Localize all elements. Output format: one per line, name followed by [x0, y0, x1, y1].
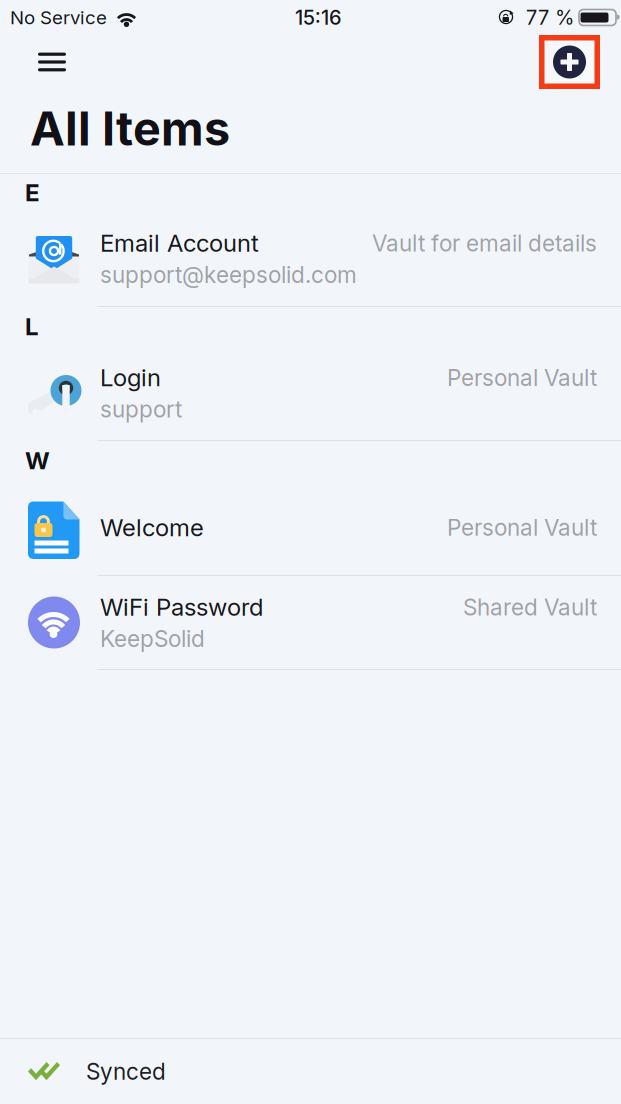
staticText: Personal Vault: [447, 514, 597, 541]
staticText: WiFi Password: [100, 593, 263, 621]
staticText: Synced: [86, 1058, 166, 1085]
button[interactable]: Login: [0, 346, 621, 441]
staticText: Welcome: [100, 513, 204, 542]
staticText: Email Account: [100, 229, 259, 257]
staticText: support: [100, 396, 182, 422]
button[interactable]: Email Account: [0, 211, 621, 307]
staticText: Login: [100, 363, 161, 392]
staticText: Personal Vault: [447, 364, 597, 391]
button[interactable]: Welcome: [0, 480, 621, 576]
staticText: support@keepsolid.com: [100, 261, 357, 288]
staticText: 77 %: [526, 6, 574, 29]
staticText: W: [25, 446, 50, 475]
staticText: KeepSolid: [100, 625, 205, 652]
staticText: L: [25, 312, 39, 341]
staticText: 15:16: [295, 6, 342, 29]
button[interactable]: Add item: [539, 35, 600, 89]
staticText: Vault for email details: [372, 230, 597, 256]
staticText: Shared Vault: [463, 594, 597, 620]
staticText: E: [25, 178, 40, 207]
staticText: No Service: [10, 6, 107, 28]
button[interactable]: WiFi Password: [0, 576, 621, 670]
button[interactable]: Menu: [26, 38, 78, 86]
staticText: All Items: [30, 101, 230, 156]
